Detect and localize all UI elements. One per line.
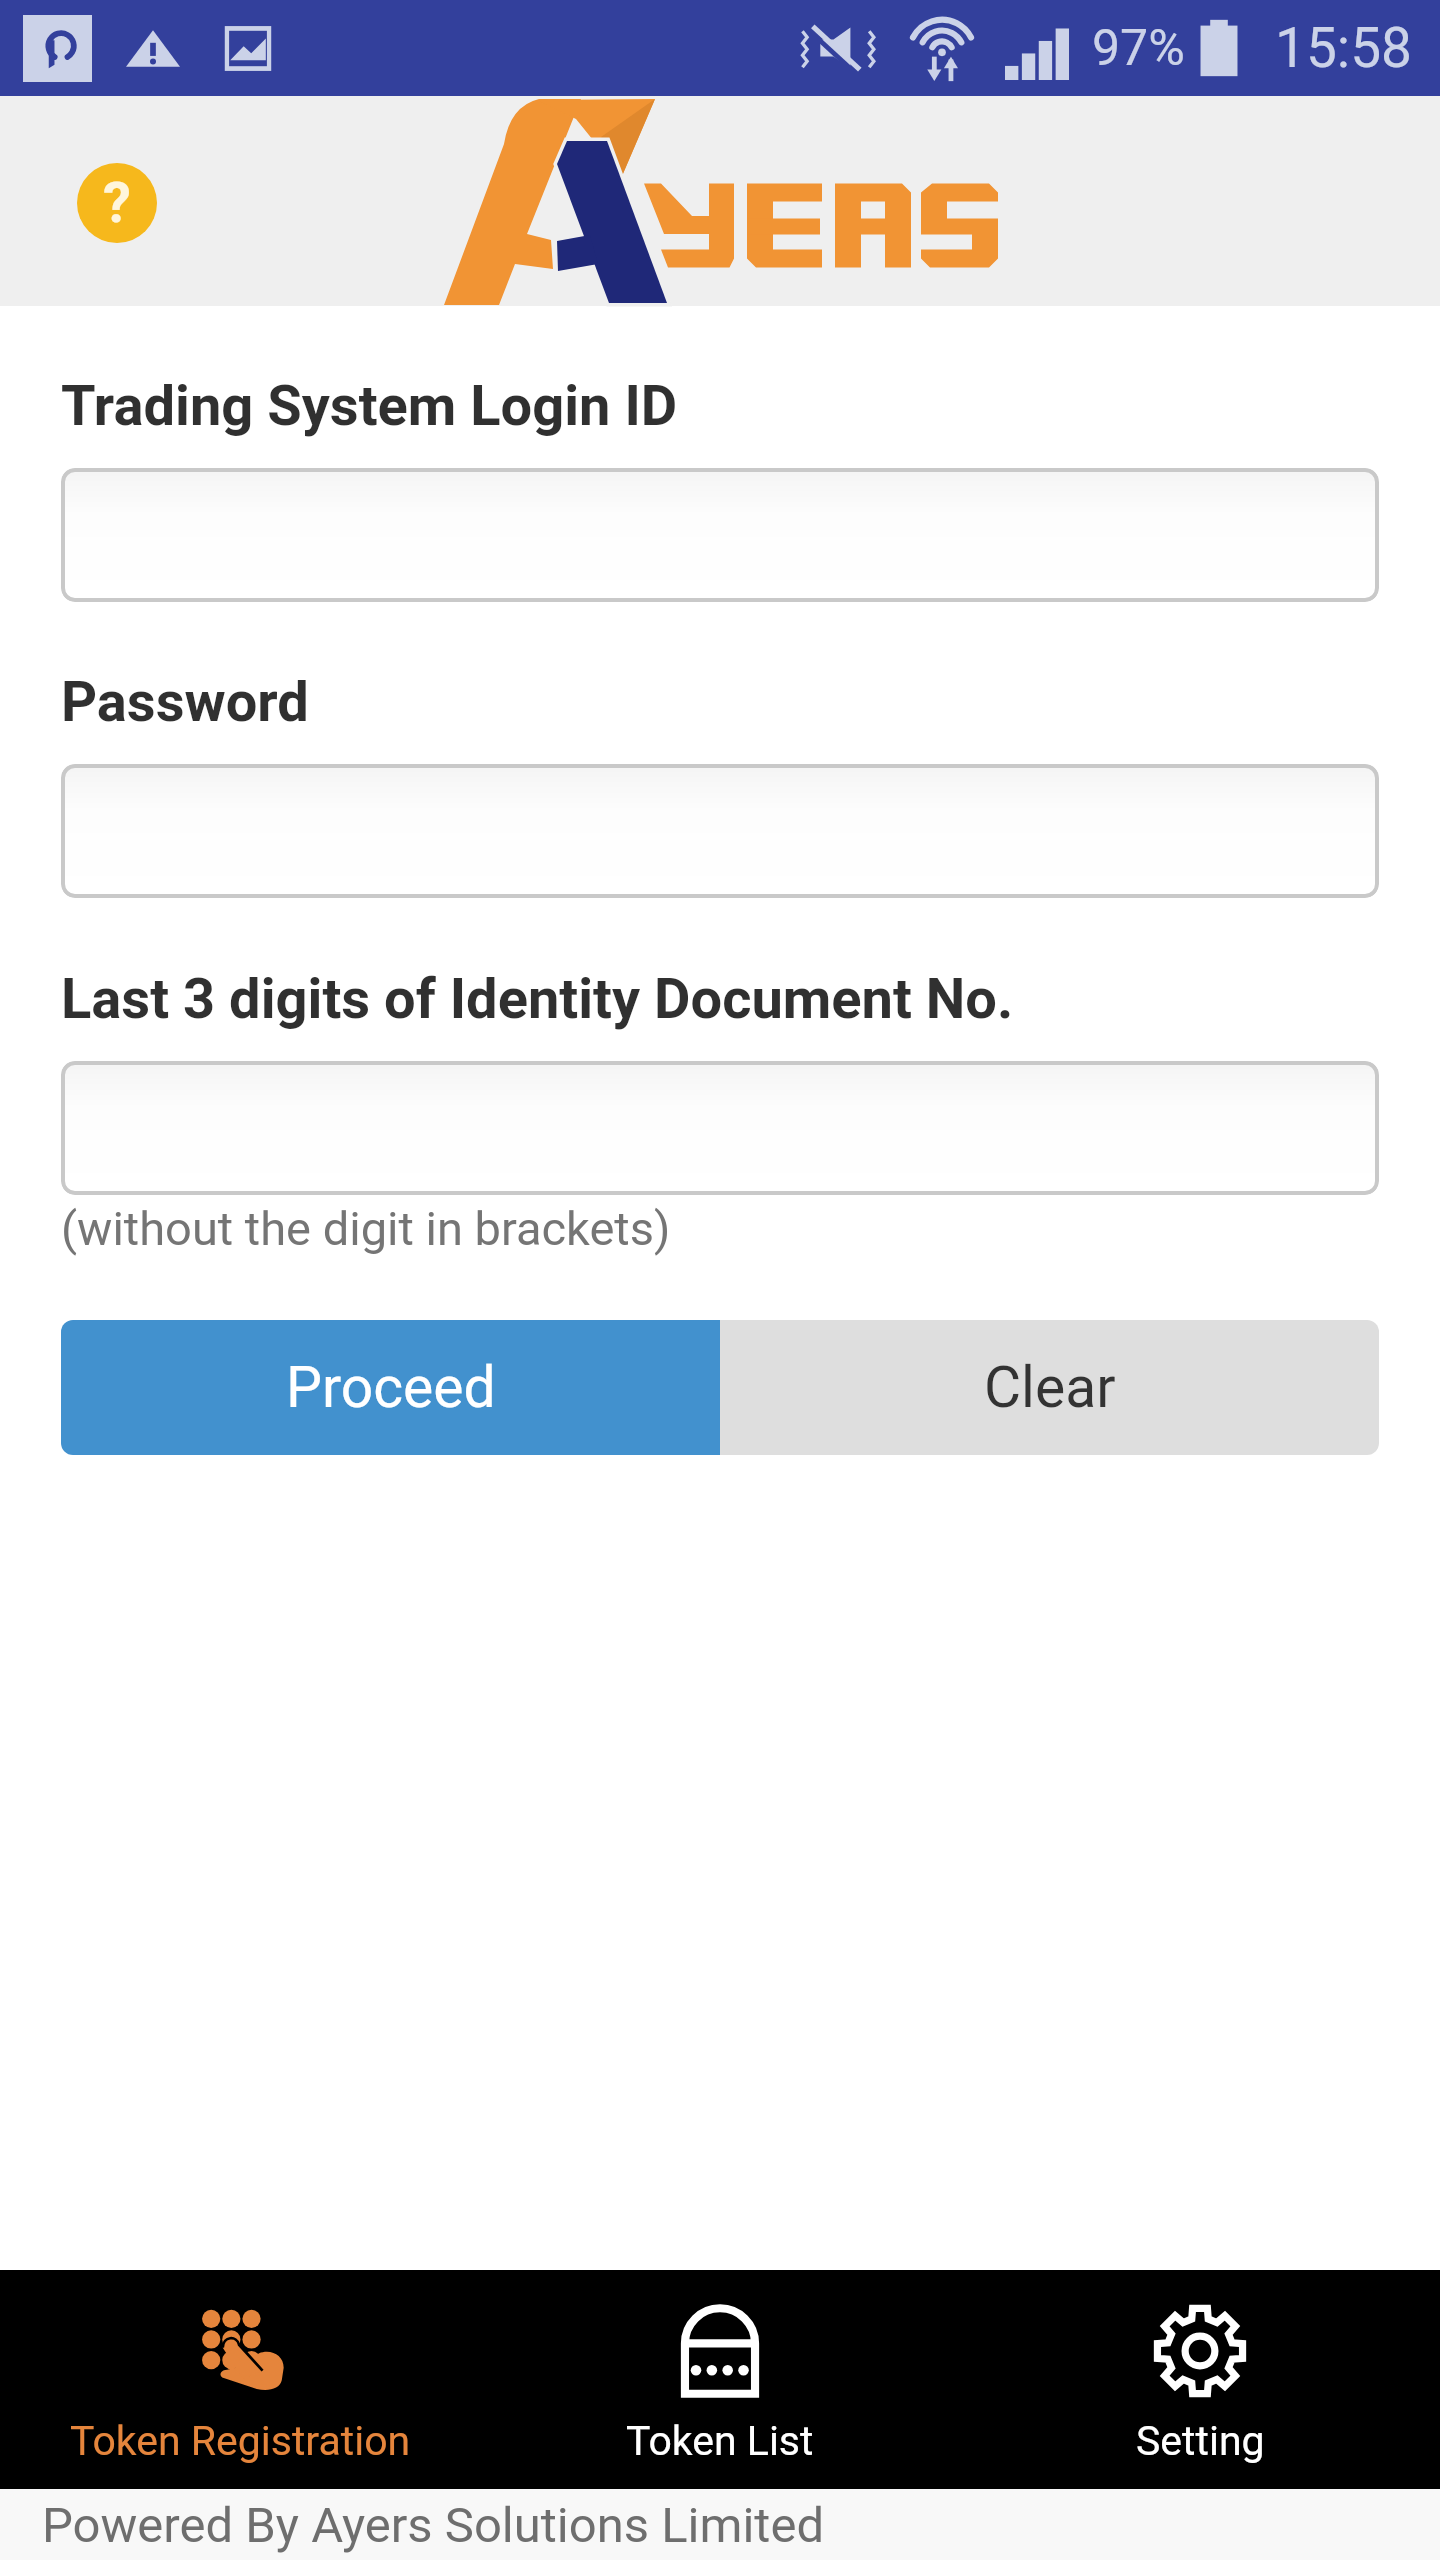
staticText: Token List: [626, 2417, 814, 2465]
staticText: 15:58: [1275, 16, 1412, 80]
staticText: Setting: [1136, 2417, 1265, 2465]
button[interactable]: Clear: [720, 1320, 1379, 1455]
staticText: 97%: [1092, 19, 1185, 78]
staticText: Password: [61, 669, 309, 735]
button[interactable]: Help: [77, 163, 157, 243]
button[interactable]: Proceed: [61, 1320, 720, 1455]
button[interactable]: [61, 468, 1379, 602]
staticText: Proceed: [286, 1354, 496, 1421]
staticText: Trading System Login ID: [61, 373, 678, 439]
button[interactable]: Setting: [960, 2270, 1440, 2489]
button[interactable]: [61, 764, 1379, 898]
staticText: Powered By Ayers Solutions Limited: [42, 2497, 825, 2554]
staticText: (without the digit in brackets): [61, 1201, 671, 1256]
staticText: Clear: [984, 1354, 1116, 1421]
staticText: Last 3 digits of Identity Document No.: [61, 966, 1014, 1032]
button[interactable]: [61, 1061, 1379, 1195]
button[interactable]: Token List: [480, 2270, 960, 2489]
staticText: Token Registration: [70, 2417, 411, 2465]
button[interactable]: Token Registration: [0, 2270, 480, 2489]
staticText: ?: [103, 170, 131, 236]
